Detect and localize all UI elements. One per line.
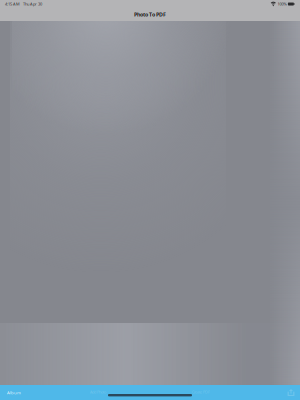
button[interactable]: Album: [0, 385, 28, 400]
staticText: 4:15 AM: [5, 1, 20, 7]
button[interactable]: Share: [282, 385, 300, 400]
staticText: 100%: [277, 1, 286, 7]
staticText: Thu Apr 30: [23, 1, 42, 7]
staticText: Add Photo: [90, 389, 106, 394]
staticText: Photo To PDF: [134, 11, 166, 18]
staticText: Create PDF: [192, 389, 210, 394]
staticText: Album: [7, 390, 21, 395]
